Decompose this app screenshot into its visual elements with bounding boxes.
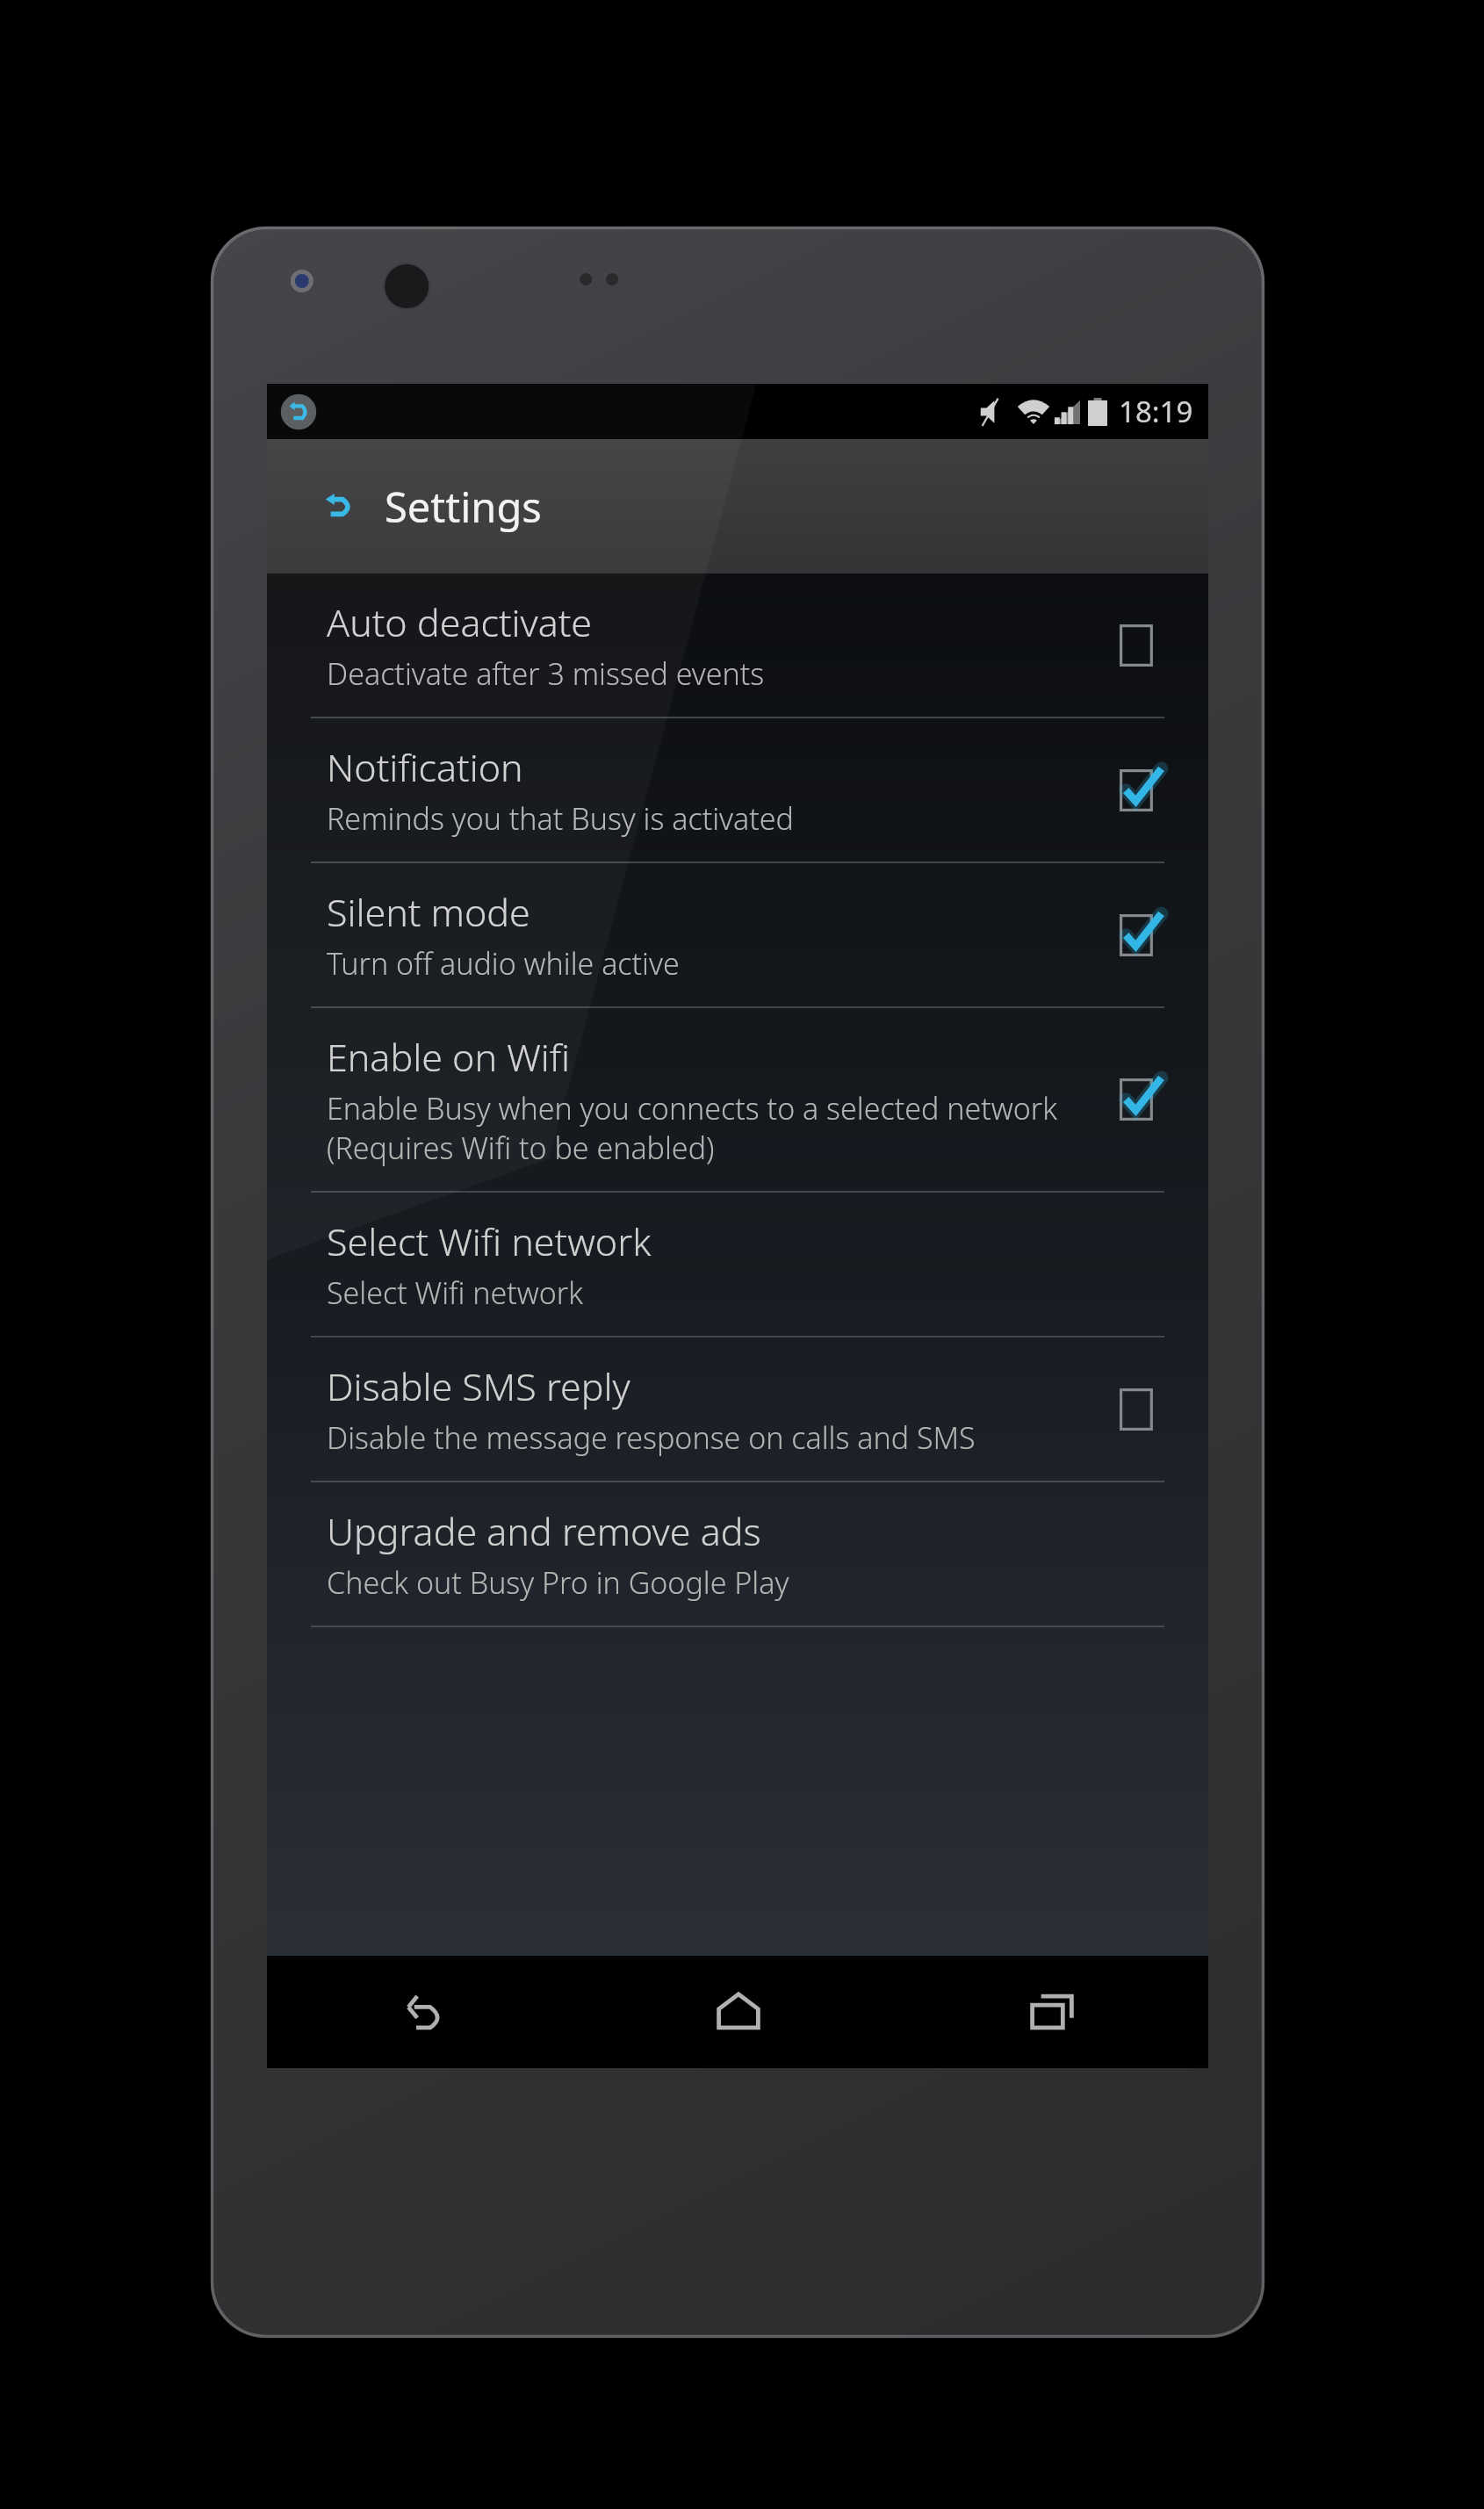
button[interactable]: Silent mode: [267, 863, 1208, 1006]
button[interactable]: Back: [267, 1956, 581, 2068]
staticText: Deactivate after 3 missed events: [327, 653, 765, 694]
button[interactable]: Upgrade and remove ads: [267, 1482, 1208, 1626]
staticText: Enable on Wifi: [327, 1031, 571, 1083]
button[interactable]: Checked: [1113, 763, 1168, 818]
button[interactable]: Auto deactivate: [267, 573, 1208, 717]
button[interactable]: Disable SMS reply: [267, 1337, 1208, 1481]
staticText: Check out Busy Pro in Google Play: [327, 1562, 789, 1603]
button[interactable]: Checked: [1113, 1072, 1168, 1127]
staticText: Silent mode: [327, 886, 530, 938]
staticText: Notification: [327, 741, 523, 793]
staticText: Disable SMS reply: [327, 1360, 630, 1412]
staticText: Disable the message response on calls an…: [327, 1417, 976, 1458]
staticText: Enable Busy when you connects to a selec…: [327, 1088, 1096, 1168]
staticText: Auto deactivate: [327, 596, 593, 648]
button[interactable]: Checked: [1113, 908, 1168, 963]
other: Up: [316, 485, 360, 529]
button[interactable]: Enable on Wifi: [267, 1008, 1208, 1191]
staticText: Select Wifi network: [327, 1215, 652, 1267]
button[interactable]: Unchecked: [1113, 618, 1168, 673]
button[interactable]: Recent apps: [895, 1956, 1208, 2068]
staticText: Upgrade and remove ads: [327, 1505, 761, 1557]
staticText: Select Wifi network: [327, 1273, 584, 1313]
button[interactable]: Notification: [267, 718, 1208, 862]
button[interactable]: Select Wifi network: [267, 1193, 1208, 1336]
staticText: 18:19: [1119, 392, 1193, 431]
button[interactable]: Home: [581, 1956, 895, 2068]
button[interactable]: Unchecked: [1113, 1382, 1168, 1437]
staticText: Reminds you that Busy is activated: [327, 798, 794, 839]
button[interactable]: Up: [267, 439, 1208, 573]
staticText: Settings: [385, 479, 542, 535]
staticText: Turn off audio while active: [327, 943, 680, 984]
